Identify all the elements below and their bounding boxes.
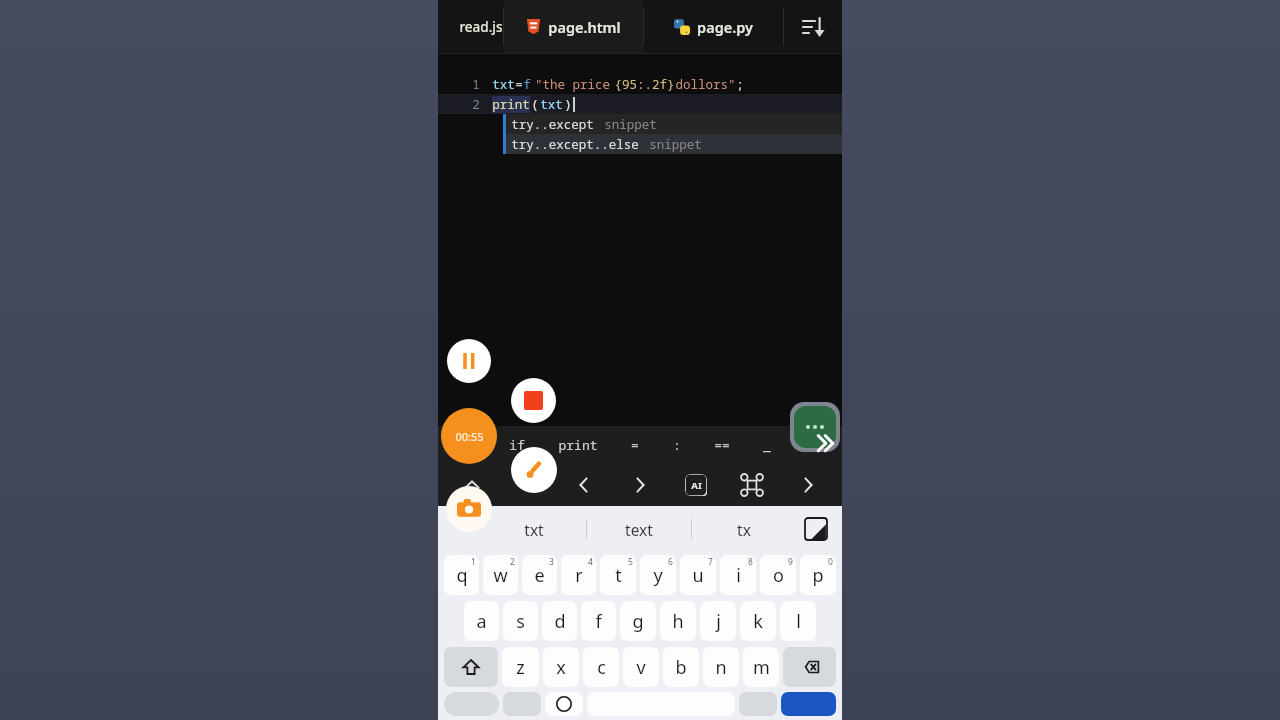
button[interactable]: h [660, 601, 696, 641]
button[interactable]: Chat [788, 400, 842, 454]
button[interactable]: {} [456, 432, 480, 458]
button[interactable]: g [620, 601, 656, 641]
button[interactable]: Backspace [783, 647, 836, 687]
button[interactable]: y [640, 555, 676, 595]
staticText: o [773, 563, 784, 588]
button[interactable]: d [542, 601, 577, 641]
staticText: 0 [828, 556, 833, 568]
button[interactable]: e [522, 555, 557, 595]
button[interactable]: _ [759, 432, 775, 458]
staticText: v [636, 655, 646, 680]
button[interactable]: Pause [447, 339, 491, 383]
button[interactable] [781, 692, 836, 716]
button[interactable]: Resize [796, 509, 836, 549]
button[interactable] [503, 692, 541, 716]
staticText: : [673, 436, 681, 454]
button[interactable]: Stop [511, 378, 556, 423]
button[interactable]: l [780, 601, 816, 641]
button[interactable]: u [680, 555, 716, 595]
staticText: a [476, 609, 487, 634]
button[interactable]: if [505, 432, 529, 458]
button[interactable]: read.js [438, 0, 503, 53]
staticText: 00:55 [455, 429, 484, 444]
button[interactable]: o [760, 555, 796, 595]
staticText: snippet [604, 116, 657, 133]
button[interactable]: AI [678, 467, 714, 503]
button[interactable]: Command [734, 467, 770, 503]
button[interactable]: c [583, 647, 619, 687]
staticText: print [492, 96, 530, 113]
button[interactable] [545, 692, 583, 716]
staticText: txt [540, 96, 563, 113]
button[interactable]: r [561, 555, 596, 595]
staticText: print [558, 436, 598, 454]
button[interactable]: k [740, 601, 776, 641]
staticText: {95:.2f} [614, 76, 675, 93]
button[interactable]: p [800, 555, 836, 595]
staticText: 3 [549, 556, 554, 568]
button[interactable]: page.html [504, 0, 643, 53]
button[interactable]: text [587, 506, 691, 552]
button[interactable]: b [663, 647, 699, 687]
button[interactable]: Shift [444, 647, 498, 687]
button[interactable]: Up [454, 467, 490, 503]
button[interactable] [739, 692, 777, 716]
staticText: b [675, 655, 687, 680]
staticText: u [692, 563, 704, 588]
button[interactable]: s [503, 601, 538, 641]
button[interactable]: x [543, 647, 579, 687]
staticText: y [653, 563, 663, 588]
staticText: t [615, 563, 622, 588]
button[interactable]: a [464, 601, 499, 641]
button[interactable]: n [703, 647, 739, 687]
button[interactable]: Clipboard [456, 516, 482, 542]
staticText: {} [460, 436, 476, 454]
staticText: dollors" [675, 76, 736, 93]
button[interactable]: Down [510, 467, 546, 503]
staticText: == [714, 436, 730, 454]
button[interactable]: Left [566, 467, 602, 503]
button[interactable]: i [720, 555, 756, 595]
button[interactable]: txt [482, 506, 586, 552]
button[interactable] [444, 692, 499, 716]
staticText: txt [524, 519, 544, 540]
staticText: x [556, 655, 566, 680]
button[interactable]: tx [692, 506, 796, 552]
staticText: m [753, 655, 770, 680]
staticText: try..except [511, 116, 594, 133]
button[interactable]: q [444, 555, 479, 595]
staticText: snippet [649, 136, 702, 153]
button[interactable]: More [790, 467, 826, 503]
button[interactable]: print [554, 432, 602, 458]
button[interactable]: j [700, 601, 736, 641]
button[interactable]: "" [800, 432, 824, 458]
button[interactable]: v [623, 647, 659, 687]
button[interactable]: page.py [644, 0, 783, 53]
staticText: z [516, 655, 525, 680]
staticText: g [632, 609, 644, 634]
button[interactable]: try..except [503, 114, 842, 134]
button[interactable]: w [483, 555, 518, 595]
button[interactable]: == [710, 432, 734, 458]
staticText: page.py [697, 17, 753, 37]
button[interactable]: f [581, 601, 616, 641]
button[interactable]: Timer [441, 408, 497, 464]
button[interactable]: Screenshot [446, 486, 492, 532]
button[interactable]: t [600, 555, 636, 595]
button[interactable]: Right [622, 467, 658, 503]
button[interactable]: m [743, 647, 779, 687]
button[interactable]: z [502, 647, 539, 687]
button[interactable]: = [627, 432, 643, 458]
button[interactable]: Draw [511, 447, 557, 493]
staticText: read.js [459, 18, 503, 36]
button[interactable]: try..except..else [503, 134, 842, 154]
staticText: 5 [628, 556, 633, 568]
staticText: 4 [588, 556, 593, 568]
staticText: = [515, 76, 523, 93]
button[interactable]: Sort [784, 0, 842, 53]
staticText: 9 [788, 556, 793, 568]
button[interactable]: : [669, 432, 685, 458]
staticText: f [595, 609, 602, 634]
staticText: 2 [510, 556, 515, 568]
